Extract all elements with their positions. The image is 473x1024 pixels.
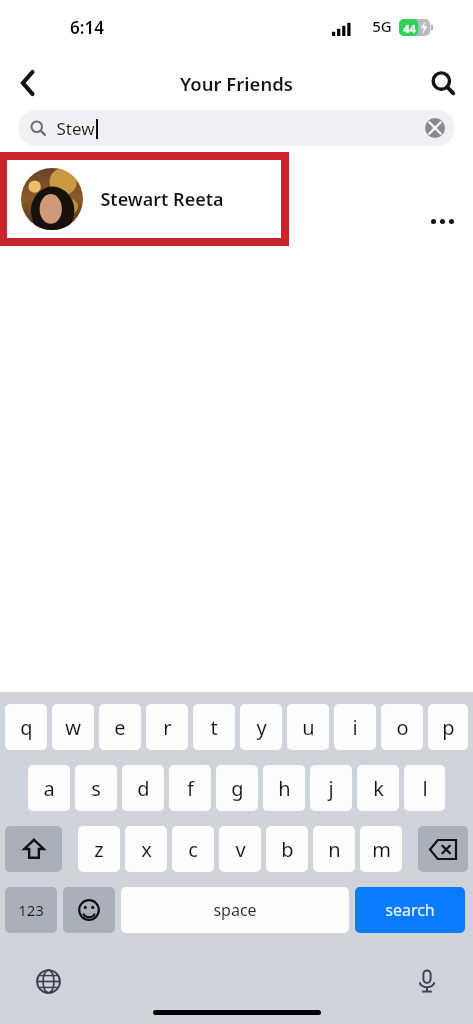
staticText: Stewart Reeta: [100, 187, 224, 212]
staticText: search: [385, 899, 435, 921]
staticText: d: [137, 775, 150, 802]
button[interactable]: w: [52, 704, 94, 750]
button[interactable]: Clear: [425, 118, 445, 138]
button[interactable]: b: [266, 826, 308, 872]
staticText: s: [91, 775, 101, 802]
staticText: g: [231, 775, 244, 802]
button[interactable]: u: [287, 704, 329, 750]
staticText: i: [352, 714, 358, 741]
staticText: 44: [403, 21, 416, 36]
staticText: a: [43, 775, 55, 802]
button[interactable]: t: [193, 704, 235, 750]
button[interactable]: More options: [424, 204, 460, 238]
button[interactable]: g: [216, 765, 258, 811]
button[interactable]: Emoji: [63, 887, 115, 933]
button[interactable]: Shift: [5, 826, 62, 872]
button[interactable]: e: [99, 704, 141, 750]
staticText: n: [328, 836, 341, 863]
staticText: t: [210, 714, 218, 741]
staticText: l: [422, 775, 428, 802]
button[interactable]: 123: [5, 887, 57, 933]
staticText: z: [94, 836, 104, 863]
button[interactable]: r: [146, 704, 188, 750]
button[interactable]: l: [404, 765, 445, 811]
staticText: o: [396, 714, 409, 741]
staticText: x: [141, 836, 152, 863]
staticText: space: [213, 899, 257, 921]
staticText: w: [65, 714, 81, 741]
button[interactable]: p: [428, 704, 468, 750]
button[interactable]: z: [78, 826, 120, 872]
button[interactable]: o: [381, 704, 423, 750]
staticText: 5G: [372, 16, 392, 36]
staticText: Your Friends: [180, 71, 293, 96]
button[interactable]: q: [5, 704, 47, 750]
button[interactable]: k: [357, 765, 399, 811]
button[interactable]: Back: [6, 56, 50, 110]
button[interactable]: Change keyboard: [30, 963, 66, 999]
button[interactable]: Stew: [18, 110, 455, 146]
staticText: r: [163, 714, 172, 741]
button[interactable]: Stewart Reeta: [7, 160, 281, 238]
staticText: c: [188, 836, 198, 863]
button[interactable]: f: [169, 765, 211, 811]
staticText: k: [373, 775, 384, 802]
button[interactable]: c: [172, 826, 214, 872]
button[interactable]: y: [240, 704, 282, 750]
staticText: v: [235, 836, 246, 863]
button[interactable]: Search: [419, 56, 467, 110]
button[interactable]: Backspace: [418, 826, 468, 872]
button[interactable]: search: [355, 887, 465, 933]
staticText: q: [20, 714, 33, 741]
button[interactable]: j: [310, 765, 352, 811]
staticText: 123: [18, 900, 44, 920]
staticText: Stew: [56, 117, 95, 140]
staticText: y: [256, 714, 267, 741]
button[interactable]: d: [122, 765, 164, 811]
button[interactable]: i: [334, 704, 376, 750]
staticText: p: [442, 714, 455, 741]
button[interactable]: s: [75, 765, 117, 811]
button[interactable]: x: [125, 826, 167, 872]
button[interactable]: Voice input: [409, 963, 445, 999]
staticText: m: [372, 836, 391, 863]
staticText: h: [278, 775, 291, 802]
staticText: j: [328, 775, 334, 802]
staticText: u: [302, 714, 315, 741]
button[interactable]: v: [219, 826, 261, 872]
button[interactable]: n: [313, 826, 355, 872]
button[interactable]: a: [28, 765, 70, 811]
staticText: 6:14: [70, 16, 104, 39]
staticText: b: [281, 836, 294, 863]
staticText: f: [187, 775, 194, 802]
button[interactable]: space: [121, 887, 349, 933]
button[interactable]: h: [263, 765, 305, 811]
staticText: e: [114, 714, 126, 741]
button[interactable]: m: [360, 826, 402, 872]
